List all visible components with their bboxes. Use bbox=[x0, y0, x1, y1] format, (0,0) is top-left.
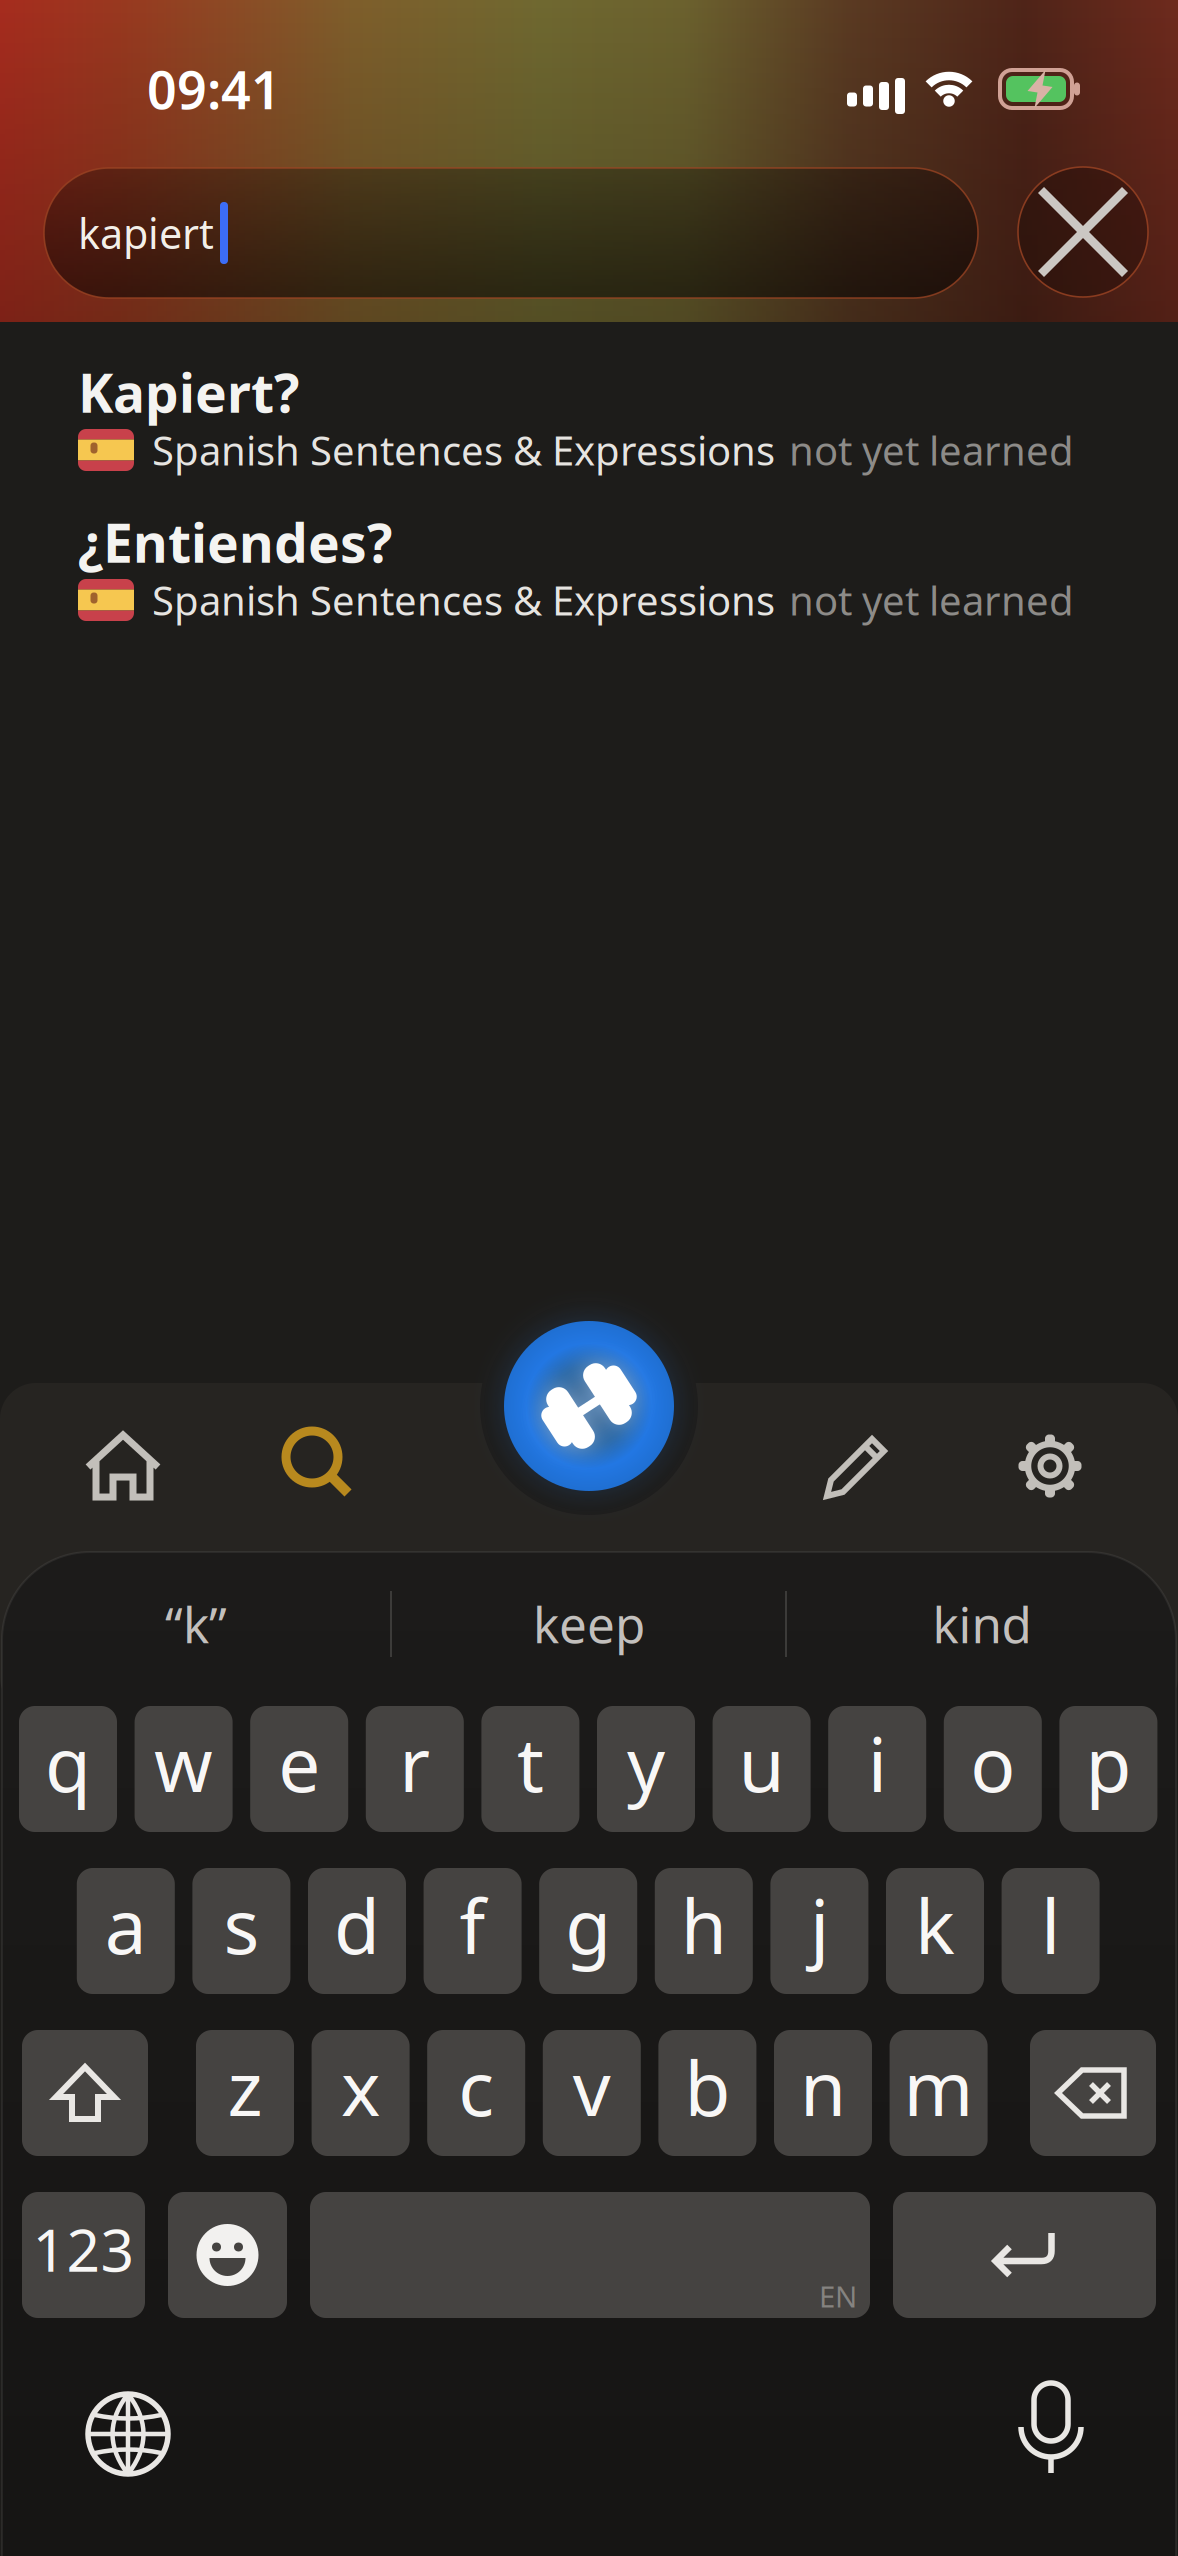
staticText: kapiert bbox=[78, 206, 214, 260]
button[interactable]: Numbers bbox=[22, 2192, 145, 2318]
button[interactable]: h bbox=[655, 1868, 753, 1994]
button[interactable]: Dictation bbox=[1019, 2382, 1083, 2474]
button[interactable]: Practice bbox=[504, 1321, 674, 1491]
button[interactable]: f bbox=[424, 1868, 522, 1994]
staticText: c bbox=[458, 2037, 494, 2137]
staticText: kind bbox=[932, 1591, 1031, 1657]
staticText: l bbox=[1041, 1875, 1060, 1975]
staticText: t bbox=[517, 1713, 544, 1813]
staticText: m bbox=[904, 2037, 974, 2137]
staticText: i bbox=[868, 1713, 887, 1813]
button[interactable]: Shift bbox=[22, 2030, 148, 2156]
staticText: z bbox=[227, 2037, 262, 2137]
button[interactable]: c bbox=[427, 2030, 525, 2156]
button[interactable]: ¿Entiendes? bbox=[0, 500, 1178, 650]
staticText: j bbox=[810, 1875, 829, 1975]
staticText: ¿Entiendes? bbox=[78, 507, 392, 577]
button[interactable]: Edit bbox=[824, 1433, 890, 1499]
staticText: q bbox=[45, 1713, 91, 1813]
staticText: v bbox=[573, 2037, 611, 2137]
button[interactable]: m bbox=[890, 2030, 988, 2156]
staticText: d bbox=[334, 1875, 380, 1975]
staticText: a bbox=[105, 1875, 147, 1975]
staticText: “k” bbox=[165, 1591, 227, 1657]
button[interactable]: Home bbox=[86, 1431, 160, 1501]
button[interactable]: s bbox=[192, 1868, 290, 1994]
button[interactable]: q bbox=[19, 1706, 117, 1832]
staticText: p bbox=[1085, 1713, 1131, 1813]
staticText: 09:41 bbox=[147, 54, 281, 124]
button[interactable]: o bbox=[944, 1706, 1042, 1832]
button[interactable]: Settings bbox=[1015, 1431, 1085, 1501]
staticText: g bbox=[565, 1875, 611, 1975]
staticText: not yet learned bbox=[789, 423, 1074, 476]
button[interactable]: j bbox=[770, 1868, 868, 1994]
button[interactable]: a bbox=[77, 1868, 175, 1994]
staticText: e bbox=[278, 1713, 320, 1813]
staticText: r bbox=[399, 1713, 430, 1813]
staticText: n bbox=[800, 2037, 846, 2137]
button[interactable]: Clear search bbox=[1018, 167, 1148, 297]
staticText: o bbox=[970, 1713, 1015, 1813]
button[interactable]: Next keyboard bbox=[88, 2394, 168, 2474]
button[interactable]: Emoji bbox=[168, 2192, 287, 2318]
staticText: f bbox=[460, 1875, 486, 1975]
staticText: k bbox=[915, 1875, 955, 1975]
staticText: h bbox=[681, 1875, 727, 1975]
staticText: EN bbox=[819, 2276, 857, 2315]
staticText: u bbox=[739, 1713, 785, 1813]
button[interactable]: Space bbox=[310, 2192, 870, 2318]
button[interactable]: r bbox=[366, 1706, 464, 1832]
staticText: Spanish Sentences & Expressions bbox=[152, 573, 775, 626]
button[interactable]: u bbox=[713, 1706, 811, 1832]
staticText: b bbox=[684, 2037, 730, 2137]
button[interactable]: keep bbox=[419, 1579, 759, 1669]
button[interactable]: k bbox=[886, 1868, 984, 1994]
button[interactable]: g bbox=[539, 1868, 637, 1994]
staticText: 123 bbox=[32, 2210, 134, 2288]
button[interactable]: z bbox=[196, 2030, 294, 2156]
button[interactable]: n bbox=[774, 2030, 872, 2156]
staticText: Spanish Sentences & Expressions bbox=[152, 423, 775, 476]
button[interactable]: “k” bbox=[26, 1579, 366, 1669]
button[interactable]: x bbox=[312, 2030, 410, 2156]
button[interactable]: w bbox=[135, 1706, 233, 1832]
button[interactable]: l bbox=[1002, 1868, 1100, 1994]
staticText: keep bbox=[533, 1591, 645, 1657]
staticText: s bbox=[223, 1875, 259, 1975]
button[interactable]: Return bbox=[893, 2192, 1156, 2318]
button[interactable]: kapiert bbox=[44, 168, 978, 298]
staticText: w bbox=[154, 1713, 213, 1813]
button[interactable]: Kapiert? bbox=[0, 350, 1178, 500]
staticText: Kapiert? bbox=[78, 357, 299, 427]
staticText: x bbox=[341, 2037, 380, 2137]
button[interactable]: t bbox=[481, 1706, 579, 1832]
staticText: not yet learned bbox=[789, 573, 1074, 626]
button[interactable]: i bbox=[828, 1706, 926, 1832]
button[interactable]: v bbox=[543, 2030, 641, 2156]
button[interactable]: b bbox=[658, 2030, 756, 2156]
button[interactable]: Delete bbox=[1030, 2030, 1156, 2156]
button[interactable]: e bbox=[250, 1706, 348, 1832]
staticText: y bbox=[627, 1713, 665, 1813]
button[interactable]: d bbox=[308, 1868, 406, 1994]
button[interactable]: p bbox=[1059, 1706, 1157, 1832]
button[interactable]: kind bbox=[812, 1579, 1152, 1669]
button[interactable]: Search bbox=[284, 1431, 352, 1495]
button[interactable]: y bbox=[597, 1706, 695, 1832]
